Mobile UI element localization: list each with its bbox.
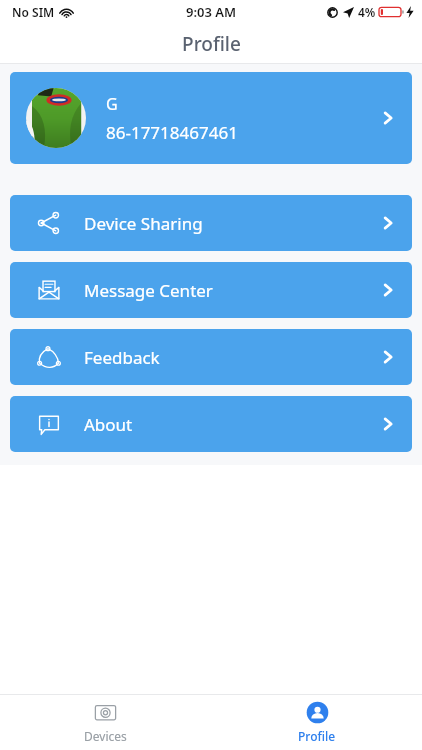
staticText: Profile bbox=[298, 728, 336, 744]
button[interactable]: Devices bbox=[60, 695, 151, 750]
staticText: Feedback bbox=[84, 346, 380, 369]
staticText: 9:03 AM bbox=[186, 3, 237, 21]
staticText: Profile bbox=[182, 31, 241, 57]
button[interactable]: Device Sharing bbox=[10, 195, 412, 251]
button[interactable]: Feedback bbox=[10, 329, 412, 385]
staticText: About bbox=[84, 413, 380, 436]
button[interactable]: Profile bbox=[274, 695, 360, 750]
staticText: Device Sharing bbox=[84, 212, 380, 235]
button[interactable]: G bbox=[10, 72, 412, 164]
staticText: Devices bbox=[84, 728, 127, 744]
staticText: Message Center bbox=[84, 279, 380, 302]
staticText: G bbox=[106, 93, 118, 115]
button[interactable]: About bbox=[10, 396, 412, 452]
button[interactable]: Message Center bbox=[10, 262, 412, 318]
staticText: 4% bbox=[358, 4, 376, 20]
staticText: No SIM bbox=[12, 4, 55, 20]
staticText: 86-17718467461 bbox=[106, 121, 238, 144]
